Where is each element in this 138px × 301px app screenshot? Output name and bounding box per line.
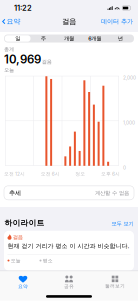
button[interactable]: 추세 (0, 186, 138, 200)
staticText: 오후 6시 (101, 171, 120, 177)
staticText: 걸음 (13, 234, 23, 240)
staticText: 오전 12시 (4, 171, 25, 177)
staticText: 걸음 (62, 17, 76, 26)
staticText: 1,000 (123, 120, 135, 126)
staticText: 개월 (64, 35, 74, 42)
staticText: 걸음 (42, 58, 52, 65)
staticText: 6개월 (88, 35, 101, 42)
staticText: 일 (15, 35, 20, 42)
staticText: 요약 (18, 283, 28, 289)
button[interactable]: 둘러보기 (92, 271, 138, 290)
staticText: 현재 걷기 거리가 평소 이 시간과 비슷합니다. (7, 242, 129, 250)
button[interactable]: 요약 (0, 271, 46, 290)
button[interactable]: 일 (5, 35, 30, 42)
staticText: 정오 (75, 171, 85, 177)
button[interactable]: 개월 (56, 35, 82, 42)
staticText: 하이라이트 (4, 218, 44, 228)
staticText: 오늘 (4, 67, 14, 73)
button[interactable]: 데이터 추가 (101, 16, 138, 27)
staticText: 계산할 수 없음 (95, 189, 129, 196)
button[interactable]: 6개월 (82, 35, 107, 42)
staticText: 모두 보기 (111, 220, 133, 227)
staticText: 10,969 (4, 52, 41, 66)
staticText: 평소 (43, 257, 53, 263)
staticText: 주 (41, 35, 46, 42)
staticText: 데이터 추가 (101, 18, 133, 25)
staticText: 0 (123, 165, 126, 171)
button[interactable]: 모두 보기 (111, 220, 133, 227)
staticText: 추세 (9, 189, 21, 197)
staticText: 11:22 (14, 3, 32, 12)
staticText: 년 (118, 35, 123, 42)
button[interactable]: 공유 (46, 271, 92, 290)
button[interactable]: 요약 (0, 16, 21, 27)
staticText: 2,000 (123, 75, 136, 81)
staticText: 공유 (64, 283, 74, 289)
button[interactable]: 주 (30, 35, 56, 42)
staticText: 오늘 (11, 257, 21, 263)
staticText: 총계 (4, 46, 14, 52)
button[interactable]: 년 (107, 35, 133, 42)
staticText: 요약 (7, 17, 21, 26)
staticText: 둘러보기 (105, 283, 125, 289)
staticText: 오전 6시 (41, 171, 60, 177)
